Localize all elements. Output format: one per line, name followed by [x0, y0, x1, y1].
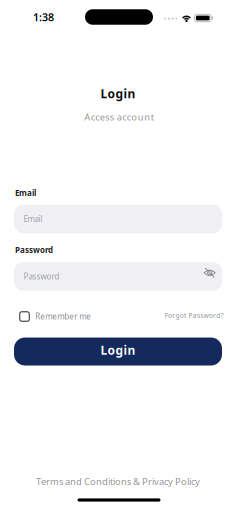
staticText: Remember me — [35, 311, 91, 322]
staticText: Access account — [84, 111, 154, 123]
staticText: Email — [15, 188, 36, 198]
staticText: Forgot Password? — [165, 311, 223, 320]
button[interactable]: Email — [14, 205, 222, 233]
button[interactable]: Password — [14, 262, 222, 291]
staticText: 1:38 — [33, 10, 54, 24]
button[interactable]: Login — [14, 337, 222, 365]
staticText: Password — [23, 271, 59, 282]
staticText: Terms and Conditions & Privacy Policy — [36, 475, 200, 488]
staticText: Password — [15, 245, 53, 255]
staticText: Login — [100, 85, 135, 101]
staticText: Login — [100, 342, 135, 358]
button[interactable]: Forgot Password? — [165, 311, 223, 320]
staticText: Email — [23, 214, 42, 224]
button[interactable]: Terms and Conditions & Privacy Policy — [36, 475, 200, 488]
button[interactable]: Remember me — [20, 311, 91, 322]
